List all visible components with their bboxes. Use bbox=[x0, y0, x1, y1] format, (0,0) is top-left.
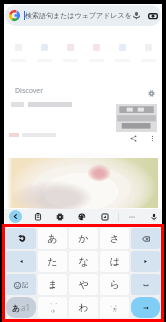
button[interactable]: や bbox=[69, 274, 98, 295]
button[interactable]: save bbox=[98, 210, 111, 223]
staticText: 検索語句またはウェブアドレスを bbox=[25, 11, 132, 20]
button[interactable]: Back bbox=[9, 210, 22, 223]
button[interactable]: tabs bbox=[31, 210, 44, 223]
button[interactable]: た bbox=[38, 251, 67, 272]
button[interactable]: 記 bbox=[6, 274, 36, 295]
button[interactable]: Voice search bbox=[132, 11, 141, 20]
button[interactable] bbox=[5, 44, 31, 62]
button[interactable]: mic bbox=[147, 210, 160, 223]
button[interactable]: あ bbox=[38, 228, 67, 249]
button[interactable] bbox=[135, 44, 161, 62]
button[interactable] bbox=[109, 44, 135, 62]
button[interactable]: more bbox=[125, 210, 138, 223]
button[interactable] bbox=[57, 44, 83, 62]
button[interactable] bbox=[116, 104, 157, 132]
button[interactable] bbox=[131, 228, 160, 249]
staticText: ?! bbox=[113, 307, 117, 314]
staticText: ら bbox=[109, 278, 120, 291]
button[interactable]: さ bbox=[100, 228, 129, 249]
staticText: a1 bbox=[21, 302, 31, 313]
staticText: さ bbox=[109, 232, 120, 245]
staticText: 、。 bbox=[110, 301, 120, 307]
button[interactable]: settings bbox=[53, 210, 66, 223]
button[interactable]: Share bbox=[127, 132, 139, 144]
button[interactable] bbox=[6, 251, 36, 272]
staticText: わ bbox=[78, 301, 89, 314]
staticText: ゛゜ bbox=[47, 302, 58, 308]
staticText: は bbox=[109, 255, 120, 268]
staticText: な bbox=[78, 255, 89, 268]
button[interactable]: More options bbox=[146, 132, 158, 144]
button[interactable]: 検索語句またはウェブアドレスを bbox=[5, 5, 161, 26]
button[interactable]: Search with camera bbox=[148, 11, 158, 21]
staticText: や bbox=[78, 278, 89, 291]
button[interactable] bbox=[7, 158, 158, 208]
button[interactable]: Discover bbox=[15, 86, 44, 96]
staticText: あ bbox=[47, 232, 58, 245]
staticText: か bbox=[78, 232, 89, 245]
button[interactable] bbox=[131, 274, 160, 295]
staticText: 記 bbox=[22, 281, 28, 289]
staticText: ま bbox=[47, 278, 58, 291]
button[interactable]: は bbox=[100, 251, 129, 272]
button[interactable]: ら bbox=[100, 274, 129, 295]
button[interactable] bbox=[131, 297, 160, 318]
button[interactable] bbox=[83, 44, 109, 62]
button[interactable]: あ bbox=[6, 297, 36, 318]
button[interactable]: か bbox=[69, 228, 98, 249]
button[interactable]: globe bbox=[75, 210, 88, 223]
staticText: 小 bbox=[51, 308, 55, 313]
staticText: た bbox=[47, 255, 58, 268]
button[interactable]: 、。 bbox=[100, 297, 129, 318]
button[interactable]: ま bbox=[38, 274, 67, 295]
staticText: あ bbox=[12, 303, 21, 313]
button[interactable] bbox=[131, 251, 160, 272]
button[interactable]: な bbox=[69, 251, 98, 272]
button[interactable] bbox=[31, 44, 57, 62]
button[interactable]: ゛゜ bbox=[38, 297, 67, 318]
button[interactable]: わ bbox=[69, 297, 98, 318]
button[interactable] bbox=[6, 228, 36, 249]
button[interactable]: Discover settings bbox=[146, 88, 157, 99]
